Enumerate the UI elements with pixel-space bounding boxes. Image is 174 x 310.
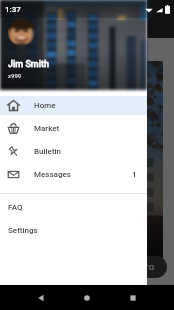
button[interactable]: Recents bbox=[126, 291, 140, 305]
button[interactable]: Home bbox=[80, 291, 94, 305]
staticText: Jim Smith bbox=[8, 59, 49, 70]
button[interactable]: Back bbox=[34, 291, 48, 305]
button[interactable]: Bulletin bbox=[0, 140, 147, 163]
button[interactable]: PHOTO bbox=[116, 256, 167, 278]
button[interactable]: Home bbox=[0, 94, 147, 117]
staticText: FAQ bbox=[8, 203, 23, 212]
staticText: Messages bbox=[34, 170, 71, 179]
button[interactable]: Market bbox=[0, 117, 147, 140]
staticText: Market bbox=[34, 124, 60, 133]
button[interactable]: FAQ bbox=[0, 196, 147, 219]
button[interactable]: Profile photo bbox=[8, 19, 35, 46]
button[interactable]: Messages bbox=[0, 163, 147, 186]
staticText: Bulletin bbox=[34, 147, 62, 156]
staticText: Settings bbox=[8, 226, 38, 235]
button[interactable]: Settings bbox=[0, 219, 147, 242]
staticText: 1 bbox=[132, 170, 137, 179]
staticText: PHOTO bbox=[128, 263, 155, 272]
staticText: 1:37 bbox=[5, 5, 21, 14]
staticText: Home bbox=[34, 101, 56, 110]
staticText: z999 bbox=[8, 72, 22, 79]
